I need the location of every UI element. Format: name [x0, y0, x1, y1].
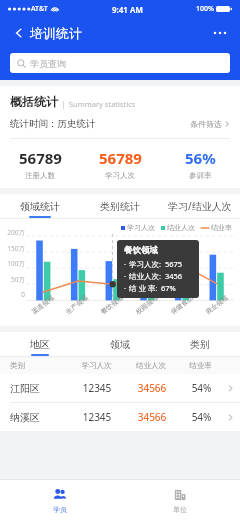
staticText: 56% — [185, 148, 216, 168]
staticText: 学员 — [53, 505, 67, 514]
staticText: 结业率 — [177, 361, 224, 370]
staticText: 100% — [196, 4, 214, 14]
staticText: 5675 — [165, 259, 183, 269]
button[interactable]: 领域统计 — [0, 194, 80, 218]
staticText: 商企领域 — [204, 294, 230, 316]
button[interactable]: 条件筛选 — [190, 119, 230, 129]
button[interactable]: 领域 — [80, 332, 160, 356]
staticText: Summary statistics — [69, 99, 136, 109]
staticText: 纳溪区 — [10, 411, 68, 424]
button[interactable]: 56789 — [0, 148, 80, 180]
staticText: 类别 — [190, 338, 210, 351]
staticText: 培训统计 — [30, 25, 82, 41]
button[interactable]: Back — [10, 24, 28, 42]
button[interactable]: 类别统计 — [80, 194, 160, 218]
staticText: 生产领域 — [64, 294, 90, 316]
staticText: 单位 — [173, 505, 187, 514]
button[interactable]: 学员查询 — [10, 53, 230, 73]
staticText: 34566 — [126, 381, 178, 395]
staticText: 领域统计 — [20, 200, 60, 213]
staticText: 12345 — [68, 410, 126, 424]
button[interactable]: 56789 — [80, 148, 160, 180]
button[interactable]: 江阳区 — [0, 374, 240, 402]
staticText: 领域 — [110, 338, 130, 351]
button[interactable]: 单位 — [120, 480, 240, 520]
button[interactable]: 学习/结业人次 — [160, 194, 240, 218]
staticText: · — [124, 259, 127, 269]
staticText: 类别统计 — [100, 200, 140, 213]
staticText: 34566 — [126, 410, 178, 424]
staticText: 校园领域 — [134, 294, 160, 316]
staticText: 结业人次: — [129, 271, 162, 281]
staticText: 50万 — [1, 275, 25, 284]
staticText: 学习人次: — [129, 259, 162, 269]
staticText: 67% — [161, 283, 176, 293]
button[interactable]: More options — [210, 23, 230, 43]
staticText: 类别 — [10, 361, 68, 370]
staticText: 100万 — [1, 259, 25, 268]
staticText: 江阳区 — [10, 382, 68, 395]
staticText: 学习人次 — [127, 223, 155, 232]
staticText: 结 业 率: — [129, 283, 158, 293]
button[interactable]: 纳溪区 — [0, 403, 240, 431]
button[interactable]: 地区 — [0, 332, 80, 356]
staticText: 概括统计 — [10, 94, 58, 109]
staticText: 结业人次 — [167, 223, 195, 232]
staticText: · — [124, 283, 127, 293]
staticText: 9:41 AM — [112, 4, 143, 15]
staticText: 0 — [1, 290, 25, 299]
staticText: 12345 — [68, 381, 126, 395]
staticText: 保健食品 — [169, 294, 195, 316]
staticText: 54% — [178, 381, 225, 395]
staticText: 结业率 — [211, 223, 232, 232]
staticText: 地区 — [30, 338, 50, 351]
staticText: 餐饮领域 — [124, 245, 158, 256]
button[interactable]: 学员 — [0, 480, 120, 520]
staticText: 统计时间：历史统计 — [10, 118, 96, 130]
staticText: 56789 — [19, 148, 62, 168]
staticText: 学习人次 — [105, 171, 135, 180]
staticText: 渠道领域 — [30, 294, 56, 316]
staticText: 3456 — [165, 271, 183, 281]
staticText: 学习人次 — [68, 361, 125, 370]
button[interactable]: 类别 — [160, 332, 240, 356]
staticText: 200万 — [1, 228, 25, 237]
button[interactable]: 56% — [160, 148, 240, 180]
staticText: 餐饮领域 — [99, 294, 125, 316]
staticText: 学员查询 — [30, 58, 66, 69]
staticText: 结业人次 — [125, 361, 177, 370]
staticText: 条件筛选 — [190, 119, 222, 129]
staticText: 学习/结业人次 — [168, 199, 232, 213]
staticText: AT&T — [31, 4, 48, 14]
staticText: · — [124, 271, 127, 281]
staticText: 54% — [178, 410, 225, 424]
staticText: 150万 — [1, 244, 25, 253]
staticText: 参训率 — [189, 171, 212, 180]
staticText: 56789 — [99, 148, 142, 168]
staticText: 注册人数 — [25, 171, 55, 180]
